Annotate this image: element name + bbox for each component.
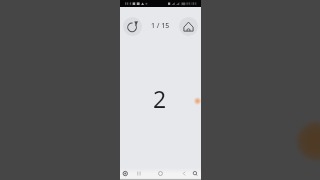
staticText: 2	[153, 83, 167, 114]
staticText: 1 / 15	[151, 21, 170, 31]
button[interactable]: Home	[179, 17, 198, 36]
button[interactable]: Refresh	[123, 17, 142, 36]
